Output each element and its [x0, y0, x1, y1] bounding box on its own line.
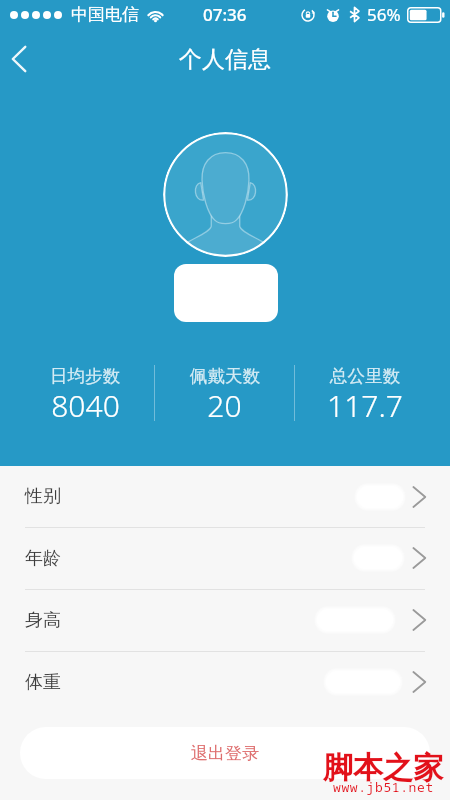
staticText: 8040 — [51, 385, 120, 419]
staticText: 体重 — [25, 671, 61, 694]
staticText: 07:36 — [203, 3, 247, 26]
staticText: 日均步数 — [50, 365, 120, 387]
staticText: 性别 — [25, 485, 61, 508]
staticText: 56% — [367, 3, 401, 26]
button[interactable]: 身高 — [0, 589, 450, 651]
staticText: 佩戴天数 — [190, 365, 260, 387]
staticText: 总公里数 — [330, 365, 400, 387]
button[interactable]: 年龄 — [0, 527, 450, 589]
staticText: 中国电信 — [71, 4, 139, 25]
staticText: 年龄 — [25, 547, 61, 570]
staticText: 脚本之家 — [323, 749, 443, 787]
staticText: www.jb51.net — [333, 778, 434, 796]
button[interactable]: 性别 — [0, 466, 450, 527]
staticText: 退出登录 — [191, 743, 259, 764]
staticText: 117.7 — [327, 385, 403, 419]
staticText: 身高 — [25, 609, 61, 632]
button[interactable]: 体重 — [0, 651, 450, 713]
staticText: 个人信息 — [179, 45, 271, 74]
button[interactable]: Back — [0, 33, 44, 85]
staticText: 20 — [207, 385, 242, 419]
button[interactable]: 退出登录 — [20, 727, 430, 779]
